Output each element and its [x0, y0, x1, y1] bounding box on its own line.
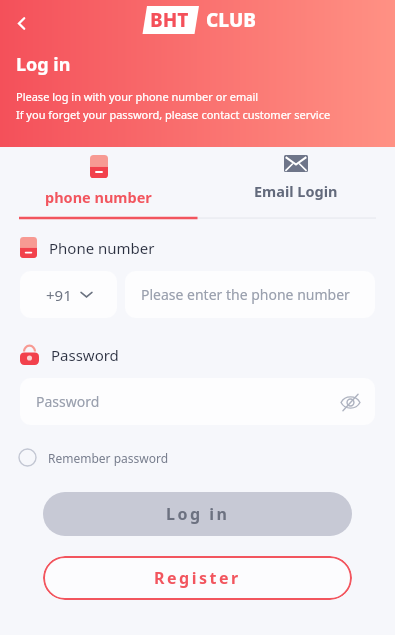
button[interactable]: phone number: [0, 147, 197, 220]
button[interactable]: Back: [4, 6, 38, 40]
staticText: phone number: [45, 187, 152, 207]
staticText: Log in: [166, 503, 230, 525]
staticText: Phone number: [49, 238, 155, 258]
button[interactable]: Password: [20, 378, 375, 425]
button[interactable]: Please enter the phone number: [125, 271, 375, 318]
staticText: Remember password: [48, 450, 169, 466]
staticText: Password: [36, 392, 337, 411]
staticText: Register: [154, 567, 241, 589]
staticText: Please enter the phone number: [141, 285, 350, 304]
button[interactable]: Log in: [43, 492, 352, 536]
staticText: Email Login: [254, 181, 338, 201]
button[interactable]: Show password: [337, 389, 363, 415]
staticText: Password: [51, 345, 119, 365]
staticText: If you forget your password, please cont…: [16, 107, 331, 122]
staticText: BHT: [150, 7, 189, 33]
staticText: Log in: [16, 52, 71, 77]
staticText: Please log in with your phone number or …: [16, 89, 259, 104]
staticText: CLUB: [206, 7, 256, 33]
button[interactable]: Email Login: [197, 147, 395, 220]
staticText: +91: [46, 285, 72, 305]
button[interactable]: Register: [43, 556, 352, 600]
button[interactable]: +91: [20, 271, 117, 318]
button[interactable]: Remember password: [16, 444, 177, 471]
